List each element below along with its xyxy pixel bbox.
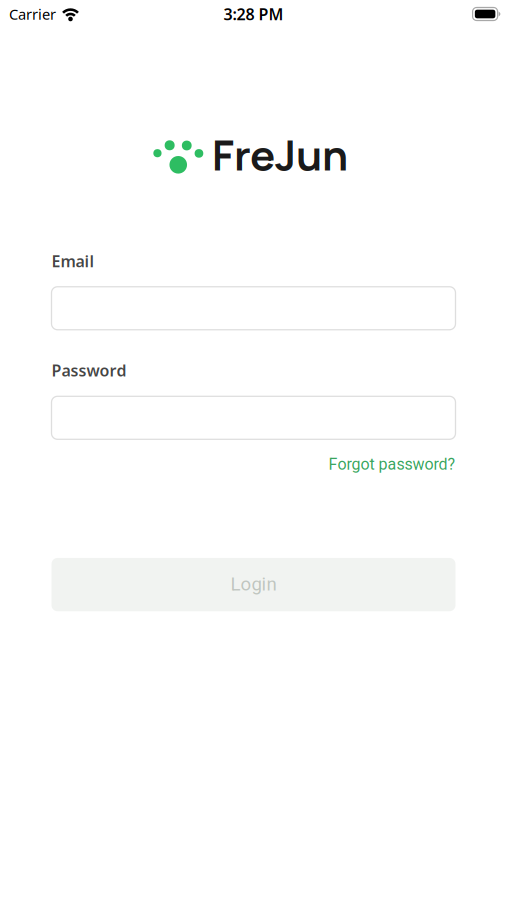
button[interactable]: Login	[51, 558, 455, 611]
button[interactable]: Password text field	[51, 396, 455, 439]
staticText: Forgot password?	[328, 455, 455, 474]
button[interactable]: Email text field	[51, 287, 455, 330]
button[interactable]: Forgot password?	[328, 455, 455, 474]
staticText: Login	[230, 573, 276, 595]
staticText: Email	[51, 250, 94, 272]
staticText: FreJun	[212, 126, 348, 183]
staticText: Carrier	[9, 4, 56, 24]
staticText: Password	[51, 360, 126, 381]
staticText: 3:28 PM	[223, 3, 283, 25]
